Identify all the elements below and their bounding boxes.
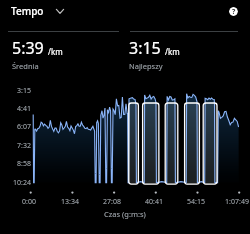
button[interactable]: Help xyxy=(229,7,238,16)
staticText: 7:32 xyxy=(0,141,31,151)
staticText: Czas (g:m:s) xyxy=(104,209,146,219)
staticText: 3:15 xyxy=(129,37,161,59)
staticText: 13:34 xyxy=(50,197,90,207)
staticText: Średnia xyxy=(12,61,39,71)
staticText: 5:39 xyxy=(12,37,44,59)
staticText: 10:24 xyxy=(0,178,31,188)
staticText: /km xyxy=(165,46,180,57)
button[interactable]: 5:39 xyxy=(0,32,125,71)
staticText: 6:07 xyxy=(0,122,31,132)
staticText: Najlepszy xyxy=(129,61,163,71)
staticText: 8:58 xyxy=(0,159,31,169)
button[interactable]: Tempo xyxy=(11,4,64,18)
staticText: 54:15 xyxy=(176,197,216,207)
staticText: 27:08 xyxy=(92,197,132,207)
staticText: 40:41 xyxy=(134,197,174,207)
staticText: 0:00 xyxy=(9,197,49,207)
staticText: 4:41 xyxy=(0,104,31,114)
staticText: /km xyxy=(48,46,63,57)
button[interactable]: 3:15 xyxy=(125,32,250,71)
staticText: Tempo xyxy=(11,4,44,18)
staticText: 1:07:49 xyxy=(217,197,250,207)
staticText: ? xyxy=(232,7,236,16)
staticText: 3:15 xyxy=(0,86,31,96)
